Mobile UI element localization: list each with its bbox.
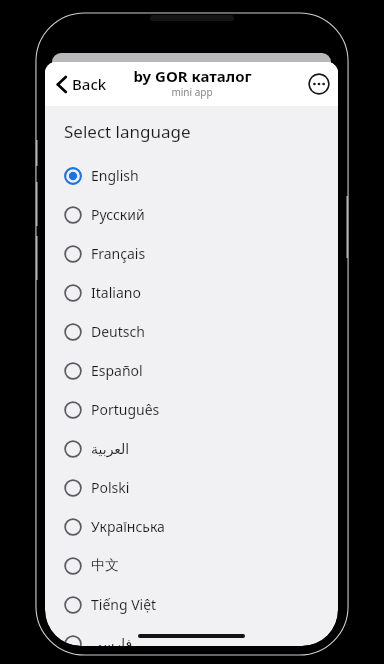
staticText: Українська (91, 517, 165, 536)
staticText: Español (91, 361, 143, 380)
staticText: English (91, 166, 139, 185)
button[interactable]: Tiếng Việt (55, 585, 328, 624)
staticText: mini app (171, 85, 213, 99)
button[interactable]: Italiano (55, 273, 328, 312)
button[interactable]: العربية (55, 429, 328, 468)
staticText: Italiano (91, 283, 141, 302)
button[interactable]: 中文 (55, 546, 328, 585)
button[interactable]: Português (55, 390, 328, 429)
staticText: Deutsch (91, 322, 145, 341)
staticText: Back (72, 74, 107, 94)
button[interactable]: فارسی (55, 624, 328, 646)
staticText: Select language (64, 120, 191, 143)
button[interactable]: Українська (55, 507, 328, 546)
button[interactable]: Français (55, 234, 328, 273)
button[interactable]: Español (55, 351, 328, 390)
button[interactable]: More options (308, 73, 330, 95)
staticText: Tiếng Việt (91, 595, 157, 614)
button[interactable]: Русский (55, 195, 328, 234)
staticText: العربية (91, 441, 130, 457)
staticText: Português (91, 400, 160, 419)
staticText: Polski (91, 478, 130, 497)
button[interactable]: Deutsch (55, 312, 328, 351)
button[interactable]: English (55, 156, 328, 195)
staticText: فارسی (91, 636, 133, 646)
button[interactable]: Back (51, 68, 129, 100)
staticText: Русский (91, 205, 145, 224)
staticText: 中文 (91, 557, 119, 575)
staticText: Français (91, 244, 146, 263)
staticText: by GOR каталог (133, 66, 252, 86)
button[interactable]: Polski (55, 468, 328, 507)
